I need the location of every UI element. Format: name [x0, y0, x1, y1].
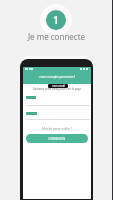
button[interactable]: CONNEXION	[26, 134, 88, 143]
staticText: Mot de passe oublie ?	[23, 127, 91, 131]
staticText: Je me connecte	[0, 31, 113, 200]
button[interactable]: mon compte personnel	[23, 67, 91, 84]
staticText: CONNEXION	[48, 137, 66, 141]
staticText: Saisissez votre email pour voir la page	[23, 87, 91, 91]
staticText: mon email	[52, 84, 65, 88]
staticText: mon compte personnel	[23, 75, 91, 79]
staticText: 1	[53, 13, 59, 27]
button[interactable]: 1	[46, 10, 66, 30]
